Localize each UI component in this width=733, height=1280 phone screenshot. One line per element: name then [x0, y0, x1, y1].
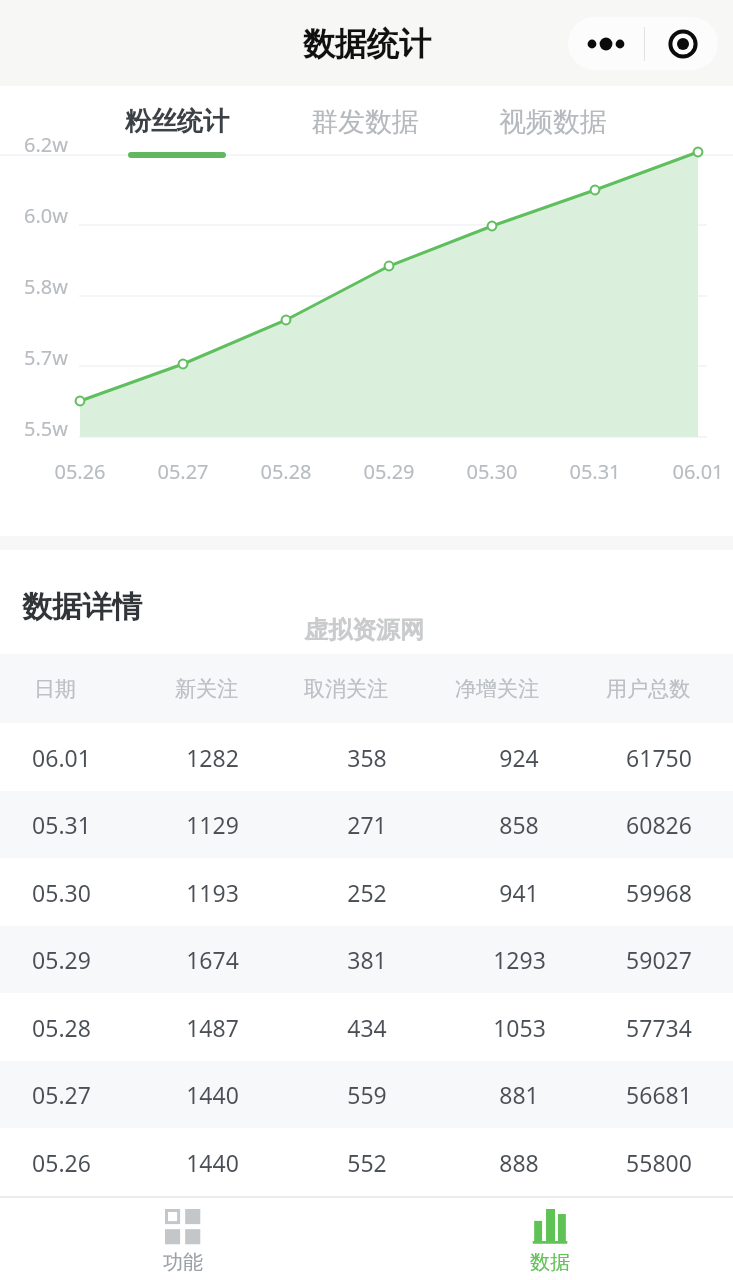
staticText: 1053 — [493, 1012, 546, 1043]
button[interactable]: 粉丝统计 — [83, 86, 271, 148]
button[interactable]: More options — [568, 17, 644, 70]
staticText: 05.28 — [32, 1012, 91, 1043]
staticText: 05.27 — [32, 1079, 91, 1110]
button[interactable]: 05.26 — [0, 1128, 733, 1196]
staticText: 56681 — [626, 1079, 692, 1110]
button[interactable]: 06.01 — [0, 723, 733, 791]
staticText: 59027 — [626, 944, 692, 975]
staticText: 924 — [499, 742, 539, 773]
staticText: 06.01 — [672, 458, 724, 485]
staticText: 1440 — [186, 1079, 239, 1110]
staticText: 数据详情 — [22, 588, 142, 626]
staticText: 55800 — [626, 1147, 692, 1178]
staticText: 05.28 — [260, 458, 312, 485]
staticText: 60826 — [626, 809, 692, 840]
staticText: 381 — [347, 944, 387, 975]
button[interactable]: 05.31 — [0, 791, 733, 858]
staticText: 视频数据 — [499, 105, 607, 139]
staticText: 05.31 — [32, 809, 91, 840]
staticText: 57734 — [626, 1012, 692, 1043]
staticText: 功能 — [163, 1250, 203, 1275]
staticText: 粉丝统计 — [125, 105, 229, 138]
staticText: 用户总数 — [606, 676, 690, 702]
staticText: 881 — [499, 1079, 539, 1110]
staticText: 05.26 — [32, 1147, 91, 1178]
button[interactable]: 05.27 — [0, 1061, 733, 1128]
staticText: 434 — [347, 1012, 387, 1043]
staticText: 净增关注 — [455, 676, 539, 702]
staticText: 252 — [347, 877, 387, 908]
staticText: 05.30 — [32, 877, 91, 908]
staticText: 05.31 — [569, 458, 621, 485]
button[interactable]: 视频数据 — [459, 86, 647, 148]
button[interactable]: Close mini program — [645, 17, 718, 70]
staticText: 6.0w — [24, 202, 68, 229]
staticText: 虚拟资源网 — [304, 615, 424, 645]
staticText: 1487 — [186, 1012, 239, 1043]
staticText: 05.27 — [157, 458, 209, 485]
staticText: 5.5w — [24, 415, 68, 442]
staticText: 1129 — [186, 809, 239, 840]
staticText: 552 — [347, 1147, 387, 1178]
staticText: 59968 — [626, 877, 692, 908]
staticText: 1282 — [186, 742, 239, 773]
staticText: 941 — [499, 877, 539, 908]
staticText: 05.26 — [54, 458, 106, 485]
button[interactable]: 群发数据 — [271, 86, 459, 148]
staticText: 05.29 — [32, 944, 91, 975]
staticText: 858 — [499, 809, 539, 840]
staticText: 数据统计 — [303, 24, 431, 64]
button[interactable]: 05.29 — [0, 926, 733, 993]
staticText: 数据 — [530, 1250, 570, 1275]
staticText: 06.01 — [32, 742, 91, 773]
staticText: 群发数据 — [311, 105, 419, 139]
staticText: 358 — [347, 742, 387, 773]
staticText: 5.8w — [24, 273, 68, 300]
button[interactable]: 数据 — [366, 1198, 733, 1280]
staticText: 05.29 — [363, 458, 415, 485]
button[interactable]: 05.30 — [0, 858, 733, 926]
staticText: 271 — [347, 809, 387, 840]
staticText: 日期 — [34, 676, 76, 702]
staticText: 5.7w — [24, 344, 68, 371]
staticText: 1193 — [186, 877, 239, 908]
staticText: 1674 — [186, 944, 239, 975]
staticText: 559 — [347, 1079, 387, 1110]
staticText: 05.30 — [466, 458, 518, 485]
staticText: 1440 — [186, 1147, 239, 1178]
button[interactable]: 功能 — [0, 1198, 366, 1280]
staticText: 新关注 — [175, 676, 238, 702]
button[interactable]: 05.28 — [0, 993, 733, 1061]
staticText: 888 — [499, 1147, 539, 1178]
staticText: 6.2w — [24, 131, 68, 158]
staticText: 取消关注 — [304, 676, 388, 702]
staticText: 61750 — [626, 742, 692, 773]
staticText: 1293 — [493, 944, 546, 975]
